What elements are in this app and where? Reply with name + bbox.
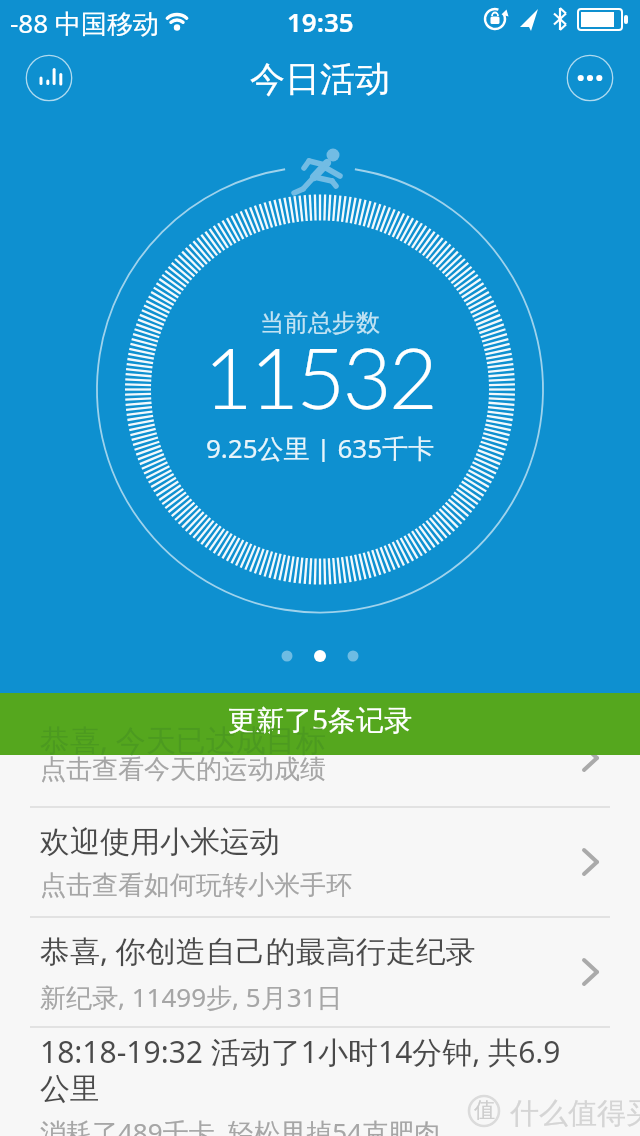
staticText: 点击查看今天的运动成绩	[40, 753, 326, 786]
staticText: 点击查看如何玩转小米手环	[40, 869, 352, 902]
staticText: 19:35	[287, 4, 354, 39]
staticText: 当前总步数	[260, 308, 380, 338]
button[interactable]: 恭喜, 你创造自己的最高行走纪录	[0, 917, 640, 1027]
button[interactable]: 欢迎使用小米运动	[0, 807, 640, 917]
staticText: 9.25公里 | 635千卡	[206, 430, 435, 462]
button[interactable]	[26, 55, 72, 101]
staticText: 更新了5条记录	[228, 700, 413, 738]
staticText: 新纪录, 11499步, 5月31日	[40, 979, 343, 1015]
staticText: 恭喜, 你创造自己的最高行走纪录	[40, 930, 476, 971]
button[interactable]	[567, 55, 613, 101]
staticText: 恭喜, 今天已达成目标	[40, 719, 326, 760]
button[interactable]: 18:18-19:32 活动了1小时14分钟, 共6.9公里	[0, 1027, 640, 1136]
button[interactable]: 更新了5条记录	[0, 693, 640, 755]
staticText: 今日活动	[250, 57, 390, 101]
staticText: 什么值得买	[510, 1095, 640, 1131]
staticText: 消耗了489千卡, 轻松甩掉54克肥肉	[40, 1114, 441, 1136]
staticText: 11532	[204, 326, 436, 422]
staticText: -88 中国移动	[10, 5, 159, 41]
staticText: 18:18-19:32 活动了1小时14分钟, 共6.9公里	[40, 1031, 570, 1108]
staticText: 欢迎使用小米运动	[40, 823, 280, 861]
staticText: 值	[474, 1097, 495, 1123]
button[interactable]: 点击查看今天的运动成绩	[0, 693, 640, 807]
